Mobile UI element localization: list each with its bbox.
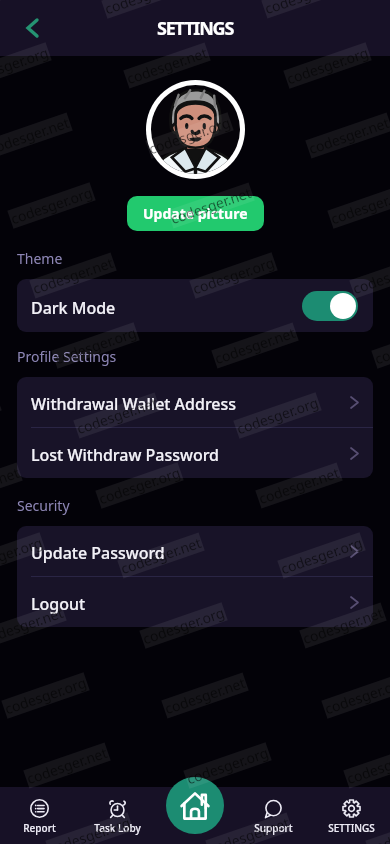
staticText: codesger.net — [124, 43, 210, 88]
staticText: codesger.org — [328, 183, 390, 228]
staticText: codesger.org — [2, 673, 89, 718]
staticText: codesger.org — [0, 43, 51, 88]
staticText: codesger.net — [118, 533, 204, 578]
staticText: codesger.org — [366, 813, 390, 844]
staticText: codesger.org — [140, 603, 227, 648]
staticText: codesger.org — [46, 813, 133, 844]
button[interactable]: Task Loby — [78, 787, 156, 844]
button[interactable]: Home — [166, 777, 224, 834]
staticText: SETTINGS — [157, 16, 234, 41]
staticText: codesger.org — [284, 43, 371, 88]
staticText: codesger.net — [256, 463, 342, 508]
button[interactable]: Logout — [17, 577, 373, 627]
staticText: codesger.net — [74, 393, 160, 438]
staticText: Theme — [17, 249, 63, 268]
staticText: codesger.net — [24, 743, 110, 788]
staticText: Update Password — [31, 542, 165, 564]
staticText: codesger.org — [102, 0, 189, 18]
staticText: codesger.net — [168, 183, 254, 228]
staticText: Support — [254, 821, 293, 835]
staticText: codesger.net — [300, 603, 386, 648]
button[interactable]: SETTINGS — [312, 787, 390, 844]
staticText: codesger.org — [322, 673, 390, 718]
staticText: codesger.net — [212, 323, 298, 368]
button[interactable]: Back — [12, 8, 52, 48]
staticText: Logout — [31, 593, 86, 615]
staticText: Profile Settings — [17, 347, 117, 366]
staticText: codesger.net — [0, 463, 22, 508]
button[interactable]: Support — [234, 787, 312, 844]
staticText: Lost Withdraw Password — [31, 444, 220, 466]
staticText: codesger.org — [190, 253, 277, 298]
staticText: Dark Mode — [31, 297, 116, 319]
staticText: codesger.net — [350, 253, 390, 298]
staticText: codesger.net — [344, 743, 390, 788]
staticText: codesger.org — [0, 393, 1, 438]
staticText: codesger.org — [8, 183, 95, 228]
staticText: codesger.org — [96, 463, 183, 508]
staticText: Security — [17, 496, 70, 515]
staticText: codesger.net — [162, 673, 248, 718]
staticText: Withdrawal Wallet Address — [31, 393, 237, 415]
staticText: Report — [23, 821, 56, 835]
staticText: codesger.org — [234, 393, 321, 438]
staticText: Task Loby — [94, 821, 141, 835]
staticText: SETTINGS — [328, 821, 375, 835]
staticText: codesger.org — [146, 113, 233, 158]
button[interactable]: Lost Withdraw Password — [17, 428, 373, 478]
staticText: codesger.net — [0, 113, 72, 158]
button[interactable]: Withdrawal Wallet Address — [17, 377, 373, 427]
staticText: codesger.net — [306, 113, 390, 158]
staticText: codesger.org — [0, 533, 45, 578]
button[interactable]: Update Password — [17, 526, 373, 576]
staticText: codesger.org — [52, 323, 139, 368]
button[interactable]: Dark Mode — [17, 279, 373, 332]
button[interactable]: Report — [0, 787, 78, 844]
staticText: codesger.org — [278, 533, 365, 578]
button[interactable]: Update picture — [127, 196, 264, 231]
staticText: Update picture — [143, 204, 248, 223]
staticText: codesger.net — [262, 0, 348, 18]
staticText: codesger.net — [30, 253, 116, 298]
staticText: codesger.org — [184, 743, 271, 788]
staticText: codesger.net — [0, 603, 66, 648]
staticText: codesger.net — [206, 813, 292, 844]
staticText: codesger.org — [372, 323, 390, 368]
